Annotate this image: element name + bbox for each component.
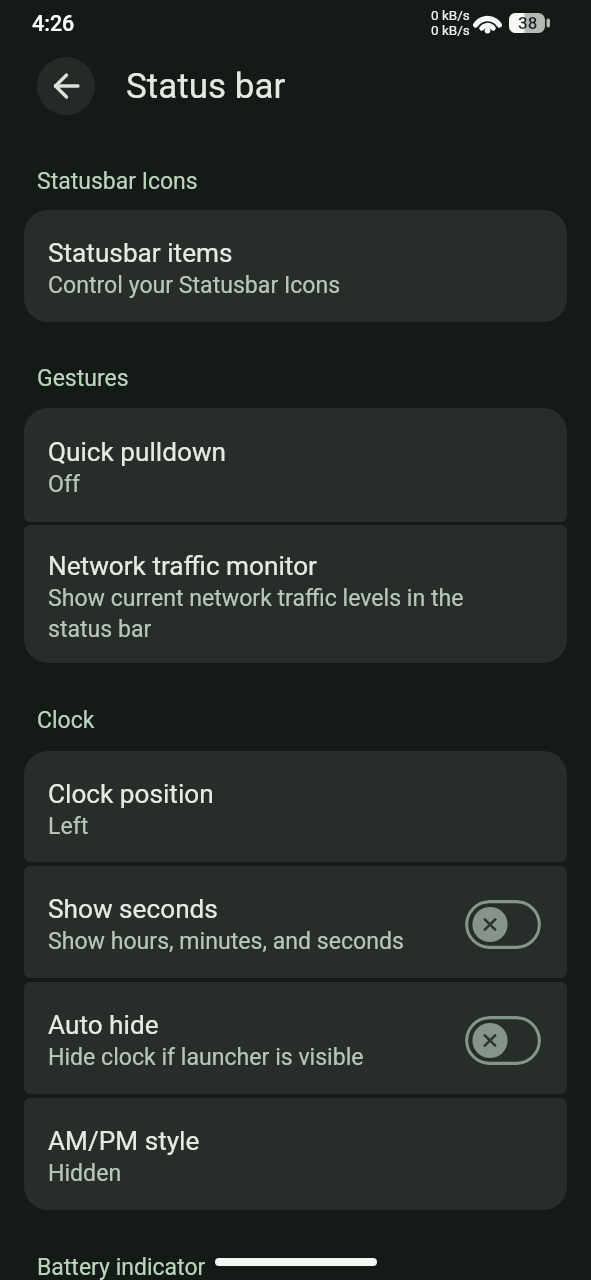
button[interactable]: Quick pulldown xyxy=(24,408,567,522)
other: Wi-Fi xyxy=(475,13,500,34)
staticText: Show seconds xyxy=(48,893,218,924)
button[interactable]: Auto hide xyxy=(24,982,567,1094)
other: Battery 38 percent xyxy=(509,13,550,33)
staticText: Statusbar items xyxy=(48,237,233,268)
staticText: Status bar xyxy=(126,66,286,107)
button[interactable]: Clock position xyxy=(24,751,567,862)
staticText: Quick pulldown xyxy=(48,436,227,467)
staticText: Left xyxy=(48,809,89,840)
staticText: Auto hide xyxy=(48,1009,159,1040)
button[interactable]: Toggle off xyxy=(465,900,541,949)
button[interactable]: Back xyxy=(37,57,95,115)
button[interactable]: Statusbar items xyxy=(24,210,567,322)
staticText: Clock xyxy=(37,707,95,733)
staticText: Control your Statusbar Icons xyxy=(48,268,341,299)
staticText: 0 kB/s xyxy=(431,23,470,38)
button[interactable]: Show seconds xyxy=(24,866,567,978)
staticText: 0 kB/s xyxy=(431,8,470,23)
staticText: Hide clock if launcher is visible xyxy=(48,1040,364,1071)
staticText: 38 xyxy=(518,13,538,33)
staticText: Clock position xyxy=(48,778,214,809)
staticText: Network traffic monitor xyxy=(48,550,317,581)
staticText: AM/PM style xyxy=(48,1125,200,1156)
staticText: 4:26 xyxy=(32,11,75,36)
staticText: Hidden xyxy=(48,1156,122,1187)
staticText: Off xyxy=(48,467,80,498)
button[interactable]: Network traffic monitor xyxy=(24,525,567,663)
staticText: Statusbar Icons xyxy=(37,168,198,194)
button[interactable]: Toggle off xyxy=(465,1016,541,1065)
staticText: Battery indicator xyxy=(37,1254,206,1280)
staticText: Show hours, minutes, and seconds xyxy=(48,924,404,955)
staticText: Show current network traffic levels in t… xyxy=(48,581,488,643)
button[interactable]: AM/PM style xyxy=(24,1098,567,1210)
staticText: Gestures xyxy=(37,365,129,391)
